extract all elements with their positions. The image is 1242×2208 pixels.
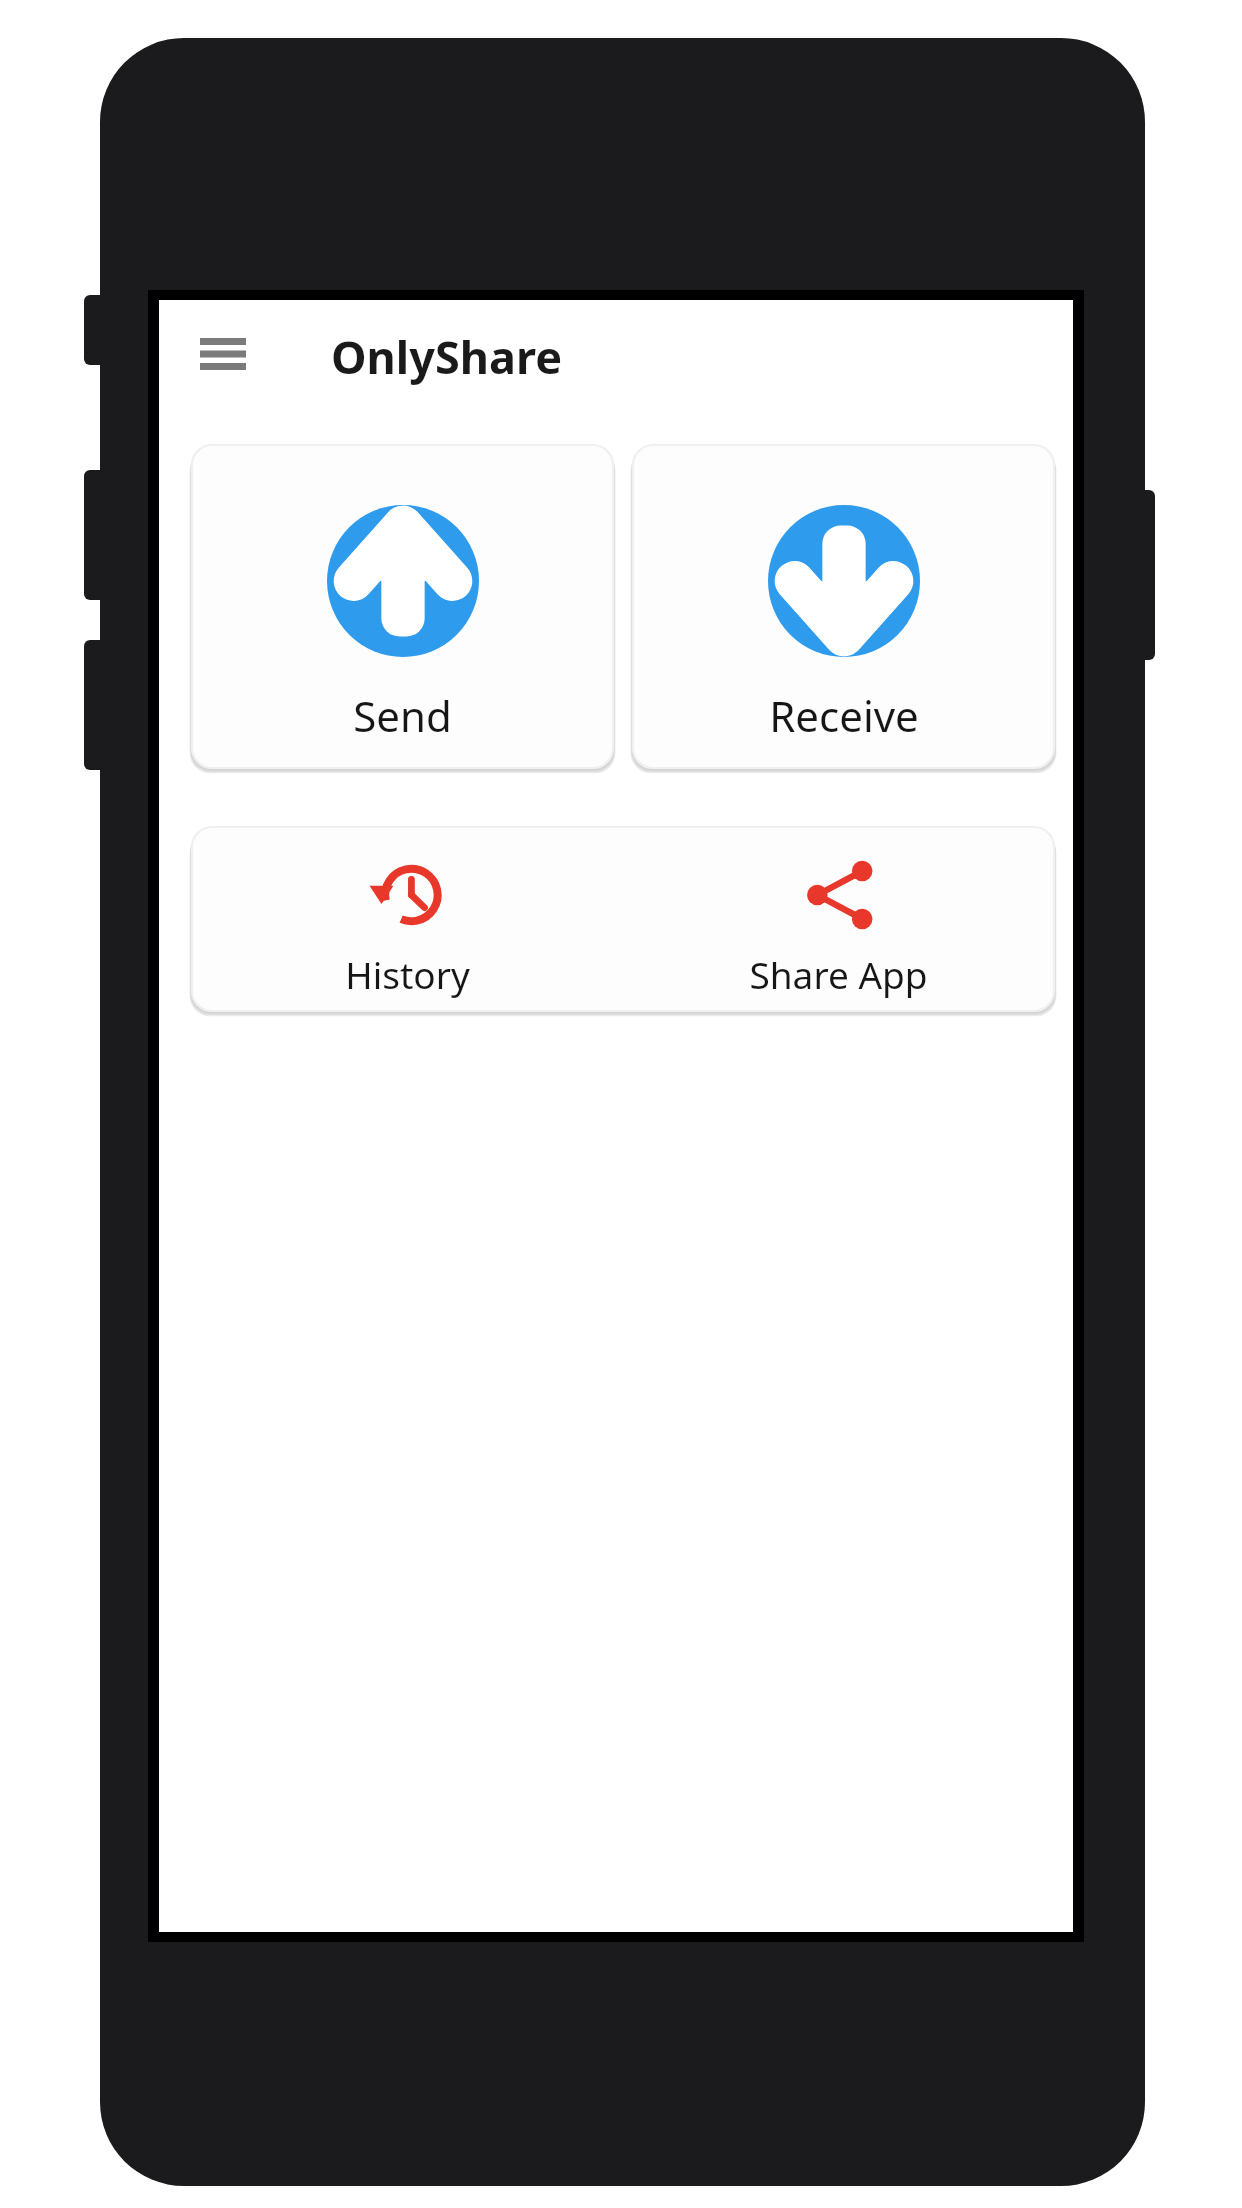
- button[interactable]: Send: [192, 445, 613, 768]
- staticText: OnlyShare: [331, 326, 563, 387]
- button[interactable]: Open navigation menu: [179, 310, 267, 398]
- staticText: History: [345, 949, 470, 999]
- button[interactable]: Receive: [633, 445, 1054, 768]
- staticText: Share App: [749, 949, 928, 999]
- staticText: Receive: [769, 687, 919, 744]
- button[interactable]: Share App: [623, 827, 1054, 1011]
- button[interactable]: History: [192, 827, 623, 1011]
- staticText: Send: [353, 687, 452, 744]
